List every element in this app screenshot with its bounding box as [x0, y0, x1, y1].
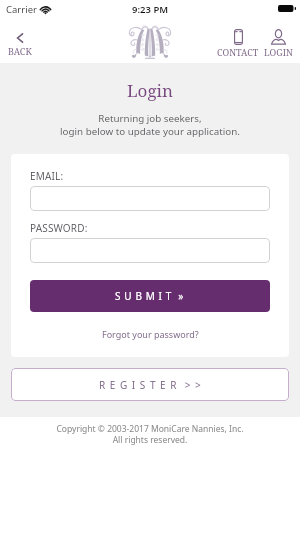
button[interactable]: S U B M I T » — [30, 280, 270, 312]
staticText: S U B M I T » — [115, 289, 185, 303]
staticText: Carrier — [6, 3, 37, 16]
button[interactable]: R E G I S T E R > > — [11, 368, 289, 401]
staticText: BACK — [8, 45, 32, 57]
staticText: Returning job seekers, login below to up… — [0, 112, 300, 138]
staticText: EMAIL: — [30, 169, 64, 183]
button[interactable]: BACK — [6, 24, 34, 60]
button[interactable] — [30, 186, 270, 211]
staticText: CONTACT — [217, 46, 259, 58]
other: Contact — [234, 29, 243, 45]
staticText: 9:23 PM — [132, 3, 169, 16]
staticText: R E G I S T E R > > — [99, 378, 202, 392]
button[interactable]: Contact — [215, 23, 261, 61]
staticText: Login — [0, 79, 300, 102]
other: Login — [271, 29, 286, 45]
staticText: LOGIN — [264, 46, 293, 58]
button[interactable]: Forgot your password? — [101, 327, 200, 341]
staticText: Copyright © 2003-2017 MoniCare Nannies, … — [0, 423, 300, 445]
button[interactable] — [30, 238, 270, 263]
staticText: PASSWORD: — [30, 221, 88, 235]
button[interactable]: Login — [262, 24, 295, 61]
